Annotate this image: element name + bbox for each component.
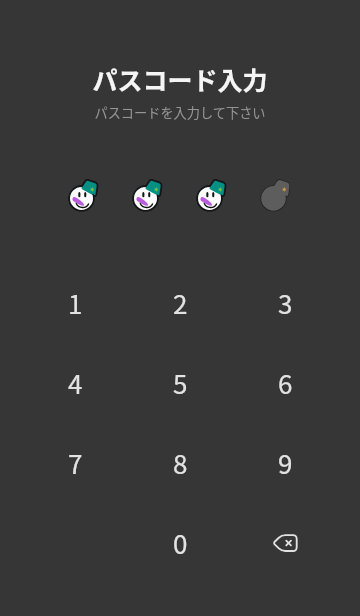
button[interactable]: 0 <box>144 507 216 579</box>
staticText: パスコードを入力して下さい <box>94 103 266 122</box>
staticText: 0 <box>173 524 188 562</box>
button[interactable]: Backspace <box>249 507 321 579</box>
button[interactable]: 9 <box>249 427 321 499</box>
staticText: 4 <box>68 364 83 402</box>
staticText: 8 <box>173 444 188 482</box>
button[interactable]: 4 <box>39 347 111 419</box>
button[interactable]: 7 <box>39 427 111 499</box>
button[interactable]: 1 <box>39 267 111 339</box>
button[interactable]: 5 <box>144 347 216 419</box>
button[interactable]: 8 <box>144 427 216 499</box>
button[interactable]: 6 <box>249 347 321 419</box>
button[interactable]: 3 <box>249 267 321 339</box>
staticText: 6 <box>278 364 293 402</box>
staticText: 2 <box>173 284 188 322</box>
staticText: 9 <box>278 444 293 482</box>
staticText: パスコード入力 <box>92 61 268 97</box>
button[interactable]: 2 <box>144 267 216 339</box>
staticText: 5 <box>173 364 188 402</box>
staticText: 3 <box>278 284 293 322</box>
staticText: 7 <box>68 444 83 482</box>
staticText: 1 <box>68 284 83 322</box>
